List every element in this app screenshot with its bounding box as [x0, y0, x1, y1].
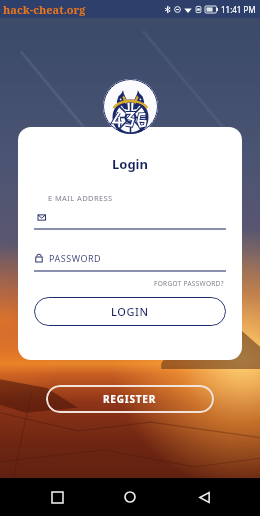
staticText: REGISTER [103, 392, 157, 406]
button[interactable]: LOGIN [34, 297, 226, 326]
staticText: Login [112, 155, 148, 173]
staticText: LOGIN [111, 304, 149, 319]
staticText: PASSWORD [49, 252, 102, 264]
button[interactable]: PASSWORD [34, 252, 226, 272]
staticText: hack-cheat.org [3, 2, 86, 17]
button[interactable]: Home [113, 480, 147, 514]
button[interactable]: REGISTER [46, 385, 214, 413]
button[interactable]: Recent apps [40, 480, 74, 514]
staticText: 11:41 PM [221, 4, 256, 15]
staticText: E MAIL ADDRESS [48, 193, 113, 203]
staticText: FORGOT PASSWORD? [154, 279, 224, 288]
button[interactable]: FORGOT PASSWORD? [152, 277, 226, 290]
button[interactable] [34, 209, 226, 230]
button[interactable]: Back [187, 480, 221, 514]
